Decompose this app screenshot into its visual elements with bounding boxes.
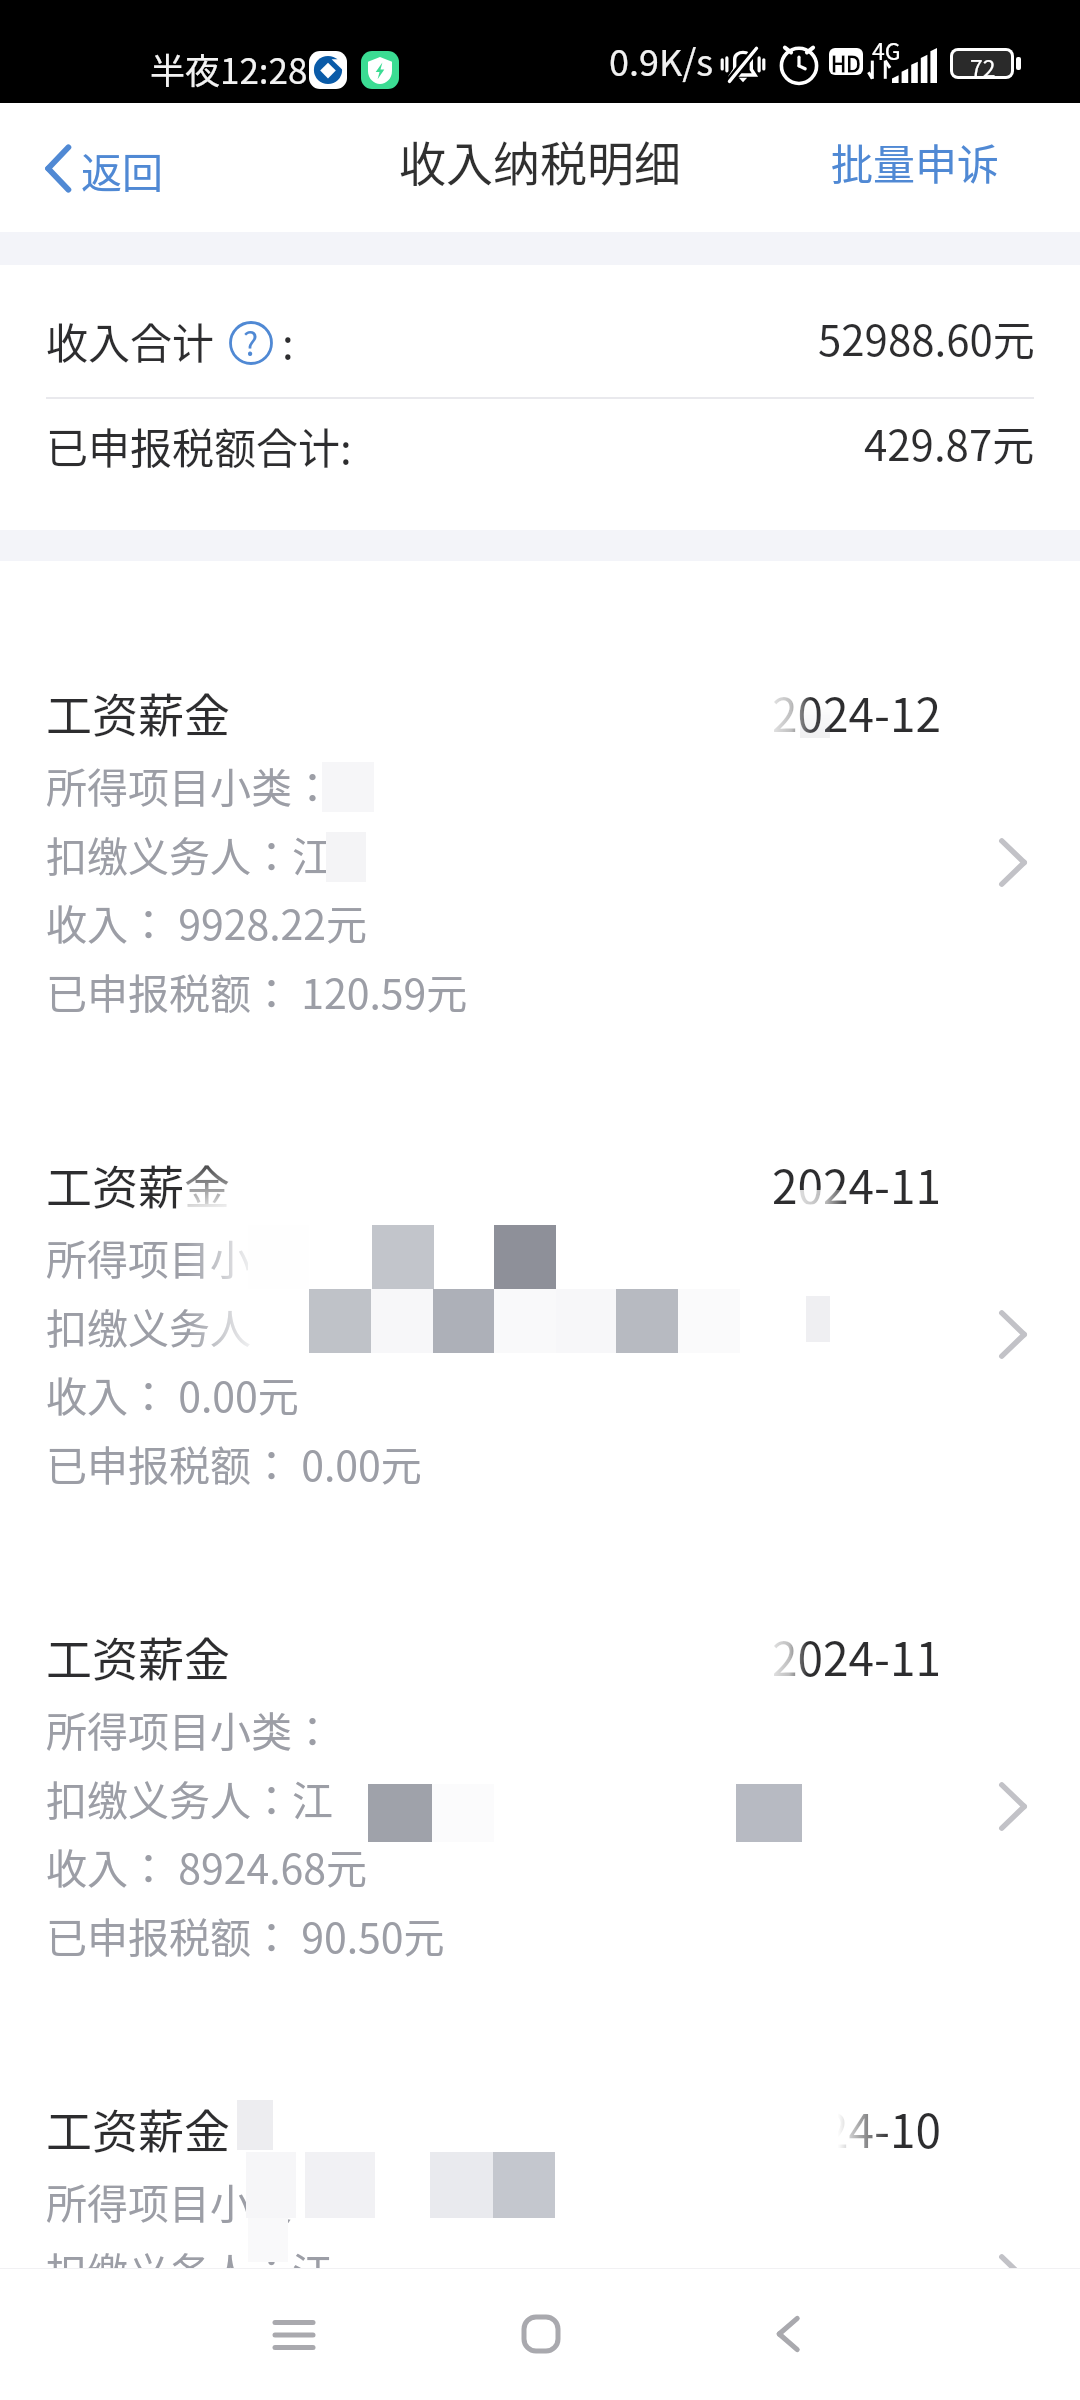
staticText: 已申报税额： 90.50元 [46,1905,445,1964]
staticText: 工资薪金 [46,679,230,746]
staticText: 工资薪金 [46,1623,230,1690]
staticText: 工资薪金 [46,1151,230,1218]
staticText: 收入合计 [46,310,215,371]
staticText: 收入： 9928.22元 [46,892,368,951]
button[interactable]: Back [728,2279,848,2389]
staticText: 扣缴义务人：江 [46,1296,333,1355]
staticText: 工资薪金 [46,2095,230,2162]
staticText: 扣缴义务人：江 [46,1768,333,1827]
staticText: 收入纳税明细 [399,126,681,194]
staticText: 4G [872,33,901,66]
staticText: 429.87元 [864,412,1035,473]
button[interactable]: Recent apps [234,2280,354,2390]
staticText: ? [243,319,259,365]
staticText: 收入： 0.00元 [46,1364,299,1423]
staticText: 所得项目小类： [46,755,333,814]
button[interactable]: 工资薪金 [0,660,1080,1132]
button[interactable]: 收入合计说明 [227,319,275,367]
staticText: 所得项目小类： [46,2171,333,2230]
staticText: 0.9K/s [609,34,714,86]
staticText: 2024-10 [772,2095,942,2162]
staticText: : [282,310,294,371]
button[interactable]: 批量申诉 [807,116,1080,206]
staticText: 返回 [81,140,163,199]
button[interactable]: 工资薪金 [0,1132,1080,1604]
staticText: 2024-11 [772,1151,942,1218]
button[interactable]: 工资薪金 [0,1604,1080,2076]
staticText: HD [831,48,861,75]
staticText: 已申报税额合计: [46,415,352,476]
staticText: 半夜12:28 [150,43,308,94]
button[interactable]: 工资薪金 [0,2076,1080,2268]
staticText: 扣缴义务人：江 [46,2240,333,2268]
staticText: 扣缴义务人：江 [46,824,333,883]
staticText: 所得项目小类： [46,1227,333,1286]
staticText: 2024-12 [772,679,942,746]
staticText: 收入： 8924.68元 [46,1836,368,1895]
button[interactable]: 返回 [28,129,187,207]
staticText: 52988.60元 [818,307,1035,368]
staticText: 72 [970,50,996,83]
staticText: 批量申诉 [831,131,1000,192]
staticText: 已申报税额： 0.00元 [46,1433,422,1492]
staticText: 2024-11 [772,1623,942,1690]
button[interactable]: Home [481,2279,601,2389]
staticText: 所得项目小类： [46,1699,333,1758]
staticText: 已申报税额： 120.59元 [46,961,468,1020]
